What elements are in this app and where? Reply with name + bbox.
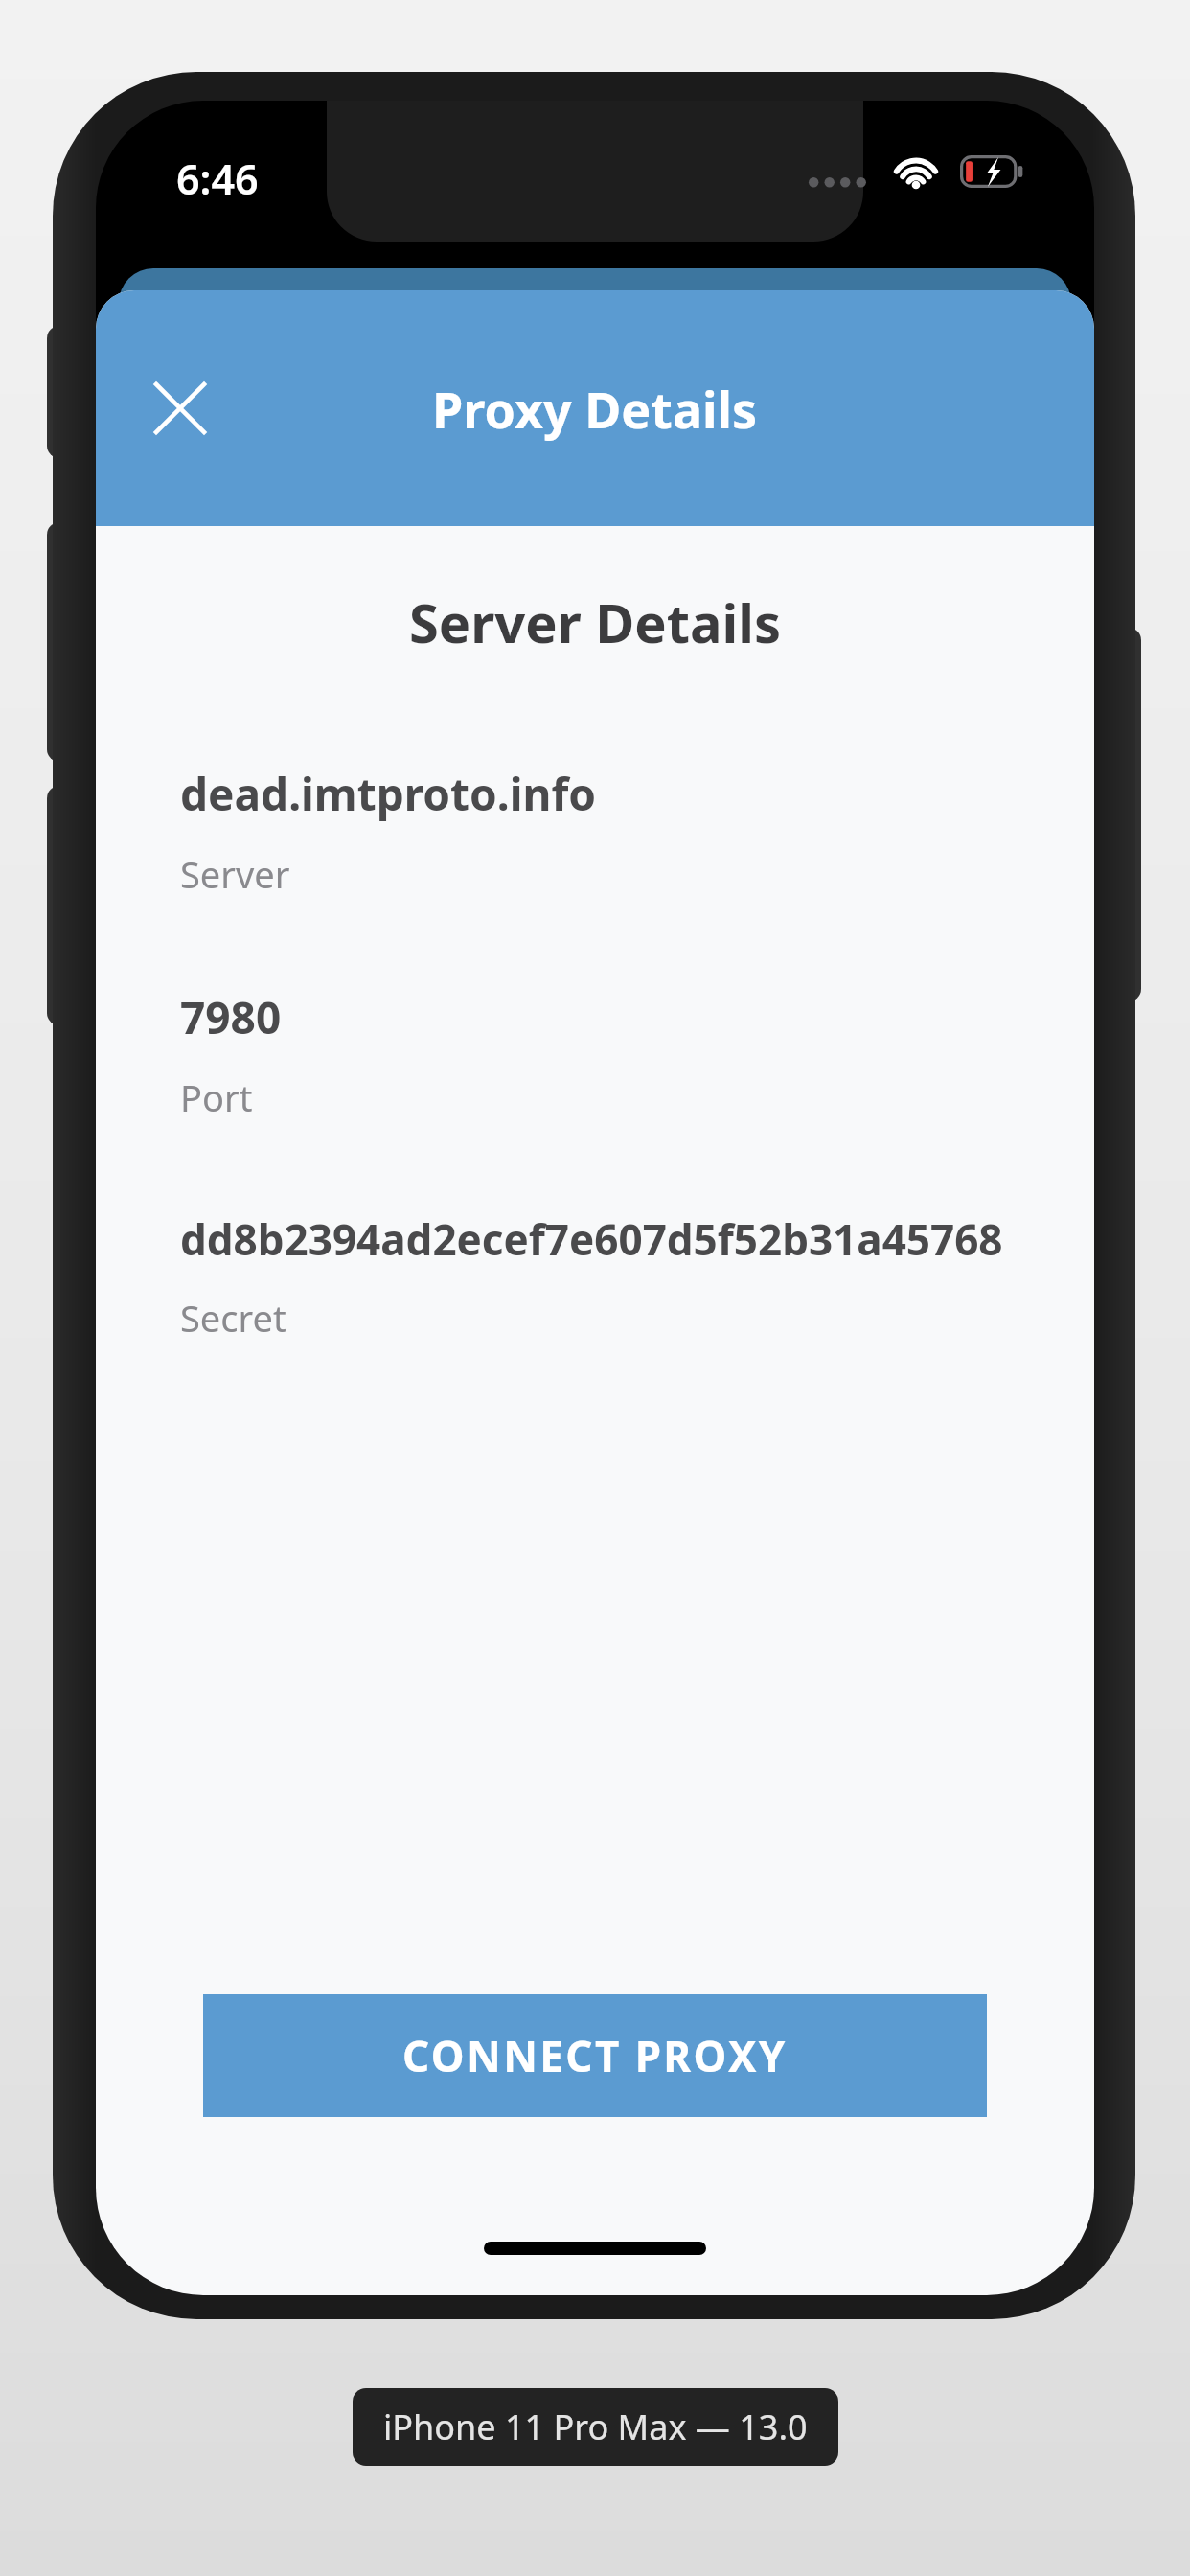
staticText: 7980 <box>180 987 282 1047</box>
button[interactable]: dd8b2394ad2ecef7e607d5f52b31a45768 <box>96 1210 1094 1343</box>
staticText: Server <box>180 849 290 899</box>
button[interactable]: CONNECT PROXY <box>203 1994 987 2117</box>
staticText: iPhone 11 Pro Max — 13.0 <box>383 2403 808 2450</box>
button[interactable]: Close <box>125 353 236 464</box>
staticText: Proxy Details <box>432 375 758 443</box>
staticText: dd8b2394ad2ecef7e607d5f52b31a45768 <box>180 1210 1003 1268</box>
button[interactable]: 7980 <box>96 987 1094 1122</box>
button[interactable]: dead.imtproto.info <box>96 764 1094 899</box>
staticText: Secret <box>180 1293 286 1343</box>
staticText: Port <box>180 1072 253 1122</box>
staticText: dead.imtproto.info <box>180 764 596 824</box>
staticText: Server Details <box>96 586 1094 658</box>
staticText: 6:46 <box>176 150 259 207</box>
staticText: CONNECT PROXY <box>402 2027 788 2084</box>
